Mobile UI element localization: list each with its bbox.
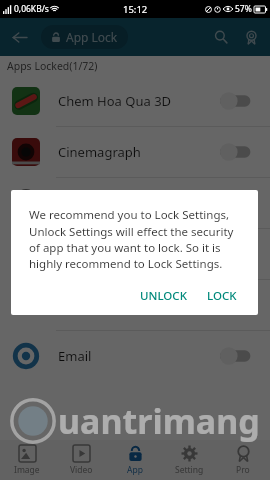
button[interactable]: Cài đặt <box>0 178 270 228</box>
button[interactable]: Danh bạ <box>0 229 270 279</box>
button[interactable]: Video <box>54 440 108 480</box>
button[interactable]: Premium <box>236 22 266 52</box>
button[interactable] <box>218 241 260 267</box>
button[interactable] <box>218 88 260 114</box>
button[interactable]: Image <box>0 440 54 480</box>
staticText: 0,06KB/s <box>14 3 49 15</box>
staticText: Cinemagraph <box>58 143 141 161</box>
staticText: Danh bạ <box>58 245 110 263</box>
staticText: Video <box>70 464 93 476</box>
staticText: Setting <box>175 464 204 476</box>
button[interactable] <box>218 190 260 216</box>
button[interactable] <box>218 139 260 165</box>
button[interactable] <box>218 343 260 369</box>
staticText: Image <box>14 464 40 476</box>
button[interactable]: Back <box>4 22 34 52</box>
staticText: We recommend you to Lock Settings, Unloc… <box>29 207 244 271</box>
staticText: 57% <box>235 3 252 15</box>
button[interactable]: Pro <box>216 440 270 480</box>
staticText: Apps Locked(1/72) <box>7 59 98 73</box>
button[interactable]: App Lock <box>41 25 128 49</box>
button[interactable]: Setting <box>162 440 216 480</box>
staticText: UNLOCK <box>140 288 187 304</box>
button[interactable]: App <box>108 440 162 480</box>
button[interactable]: Duolingo <box>0 280 270 330</box>
button[interactable]: Email <box>0 331 270 381</box>
staticText: Pro <box>236 464 250 476</box>
staticText: App Lock <box>66 29 118 45</box>
staticText: LOCK <box>207 288 237 304</box>
staticText: uantrimang <box>58 398 260 444</box>
button[interactable]: UNLOCK <box>133 281 194 311</box>
staticText: Email <box>58 347 92 365</box>
button[interactable]: Cinemagraph <box>0 127 270 177</box>
button[interactable]: LOCK <box>200 281 244 311</box>
button[interactable]: Search <box>206 22 236 52</box>
button[interactable]: Chem Hoa Qua 3D <box>0 76 270 126</box>
staticText: Chem Hoa Qua 3D <box>58 92 172 110</box>
button[interactable] <box>218 292 260 318</box>
staticText: 15:12 <box>123 3 148 16</box>
staticText: App <box>127 464 143 476</box>
